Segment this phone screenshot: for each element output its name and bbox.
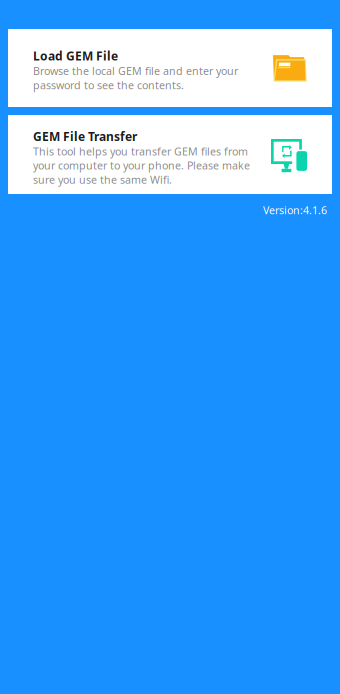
staticText: This tool helps you transfer GEM files f… <box>33 144 250 187</box>
button[interactable]: Load GEM File <box>8 29 332 107</box>
staticText: Load GEM File <box>33 48 118 64</box>
staticText: Browse the local GEM file and enter your… <box>33 64 238 92</box>
staticText: Version:4.1.6 <box>263 203 327 217</box>
button[interactable]: GEM File Transfer <box>8 115 332 194</box>
staticText: GEM File Transfer <box>33 128 137 144</box>
